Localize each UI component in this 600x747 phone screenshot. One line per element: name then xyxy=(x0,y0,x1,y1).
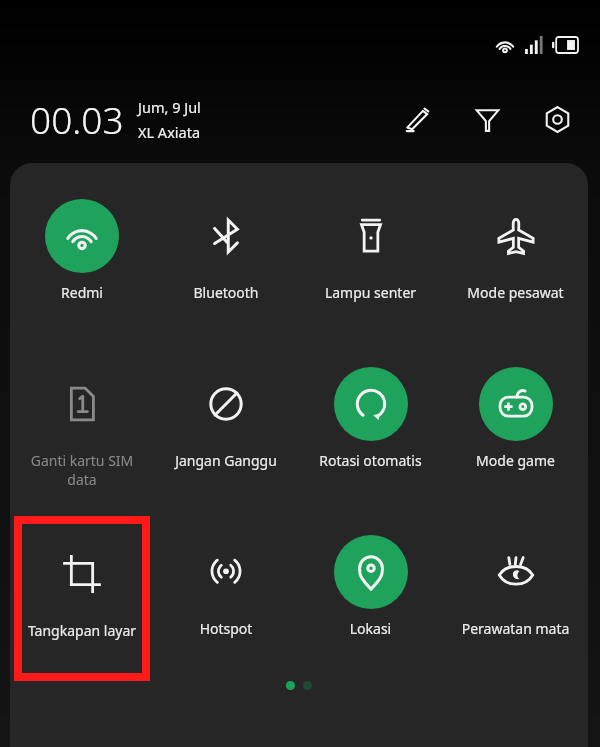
button[interactable]: Bluetooth xyxy=(154,183,298,302)
staticText: Redmi xyxy=(10,283,154,302)
staticText: Lokasi xyxy=(298,619,443,638)
button[interactable]: Ganti kartu SIM data xyxy=(10,351,154,489)
button[interactable]: Mode pesawat xyxy=(443,183,588,302)
staticText: Jum, 9 Jul xyxy=(138,97,201,117)
button[interactable]: Redmi xyxy=(10,183,154,302)
button[interactable]: Tangkapan layar xyxy=(18,520,146,668)
staticText: XL Axiata xyxy=(138,122,201,142)
button[interactable]: Settings xyxy=(540,102,574,136)
staticText: Jangan Ganggu xyxy=(154,451,298,470)
staticText: Lampu senter xyxy=(298,283,443,302)
staticText: Rotasi otomatis xyxy=(298,451,443,470)
staticText: Perawatan mata xyxy=(443,619,588,638)
staticText: 00.03 xyxy=(30,94,124,144)
button[interactable]: Jangan Ganggu xyxy=(154,351,298,470)
button[interactable]: Lokasi xyxy=(298,519,443,638)
button[interactable]: Perawatan mata xyxy=(443,519,588,638)
staticText: Mode game xyxy=(443,451,588,470)
staticText: Tangkapan layar xyxy=(18,621,146,640)
button[interactable]: Mode game xyxy=(443,351,588,470)
button[interactable]: Rotasi otomatis xyxy=(298,351,443,470)
button[interactable]: Hotspot xyxy=(154,519,298,638)
button[interactable]: Filter xyxy=(470,102,504,136)
staticText: Ganti kartu SIM data xyxy=(10,451,154,489)
staticText: Hotspot xyxy=(154,619,298,638)
button[interactable]: Edit xyxy=(400,102,434,136)
button[interactable]: Lampu senter xyxy=(298,183,443,302)
staticText: Mode pesawat xyxy=(443,283,588,302)
staticText: Bluetooth xyxy=(154,283,298,302)
